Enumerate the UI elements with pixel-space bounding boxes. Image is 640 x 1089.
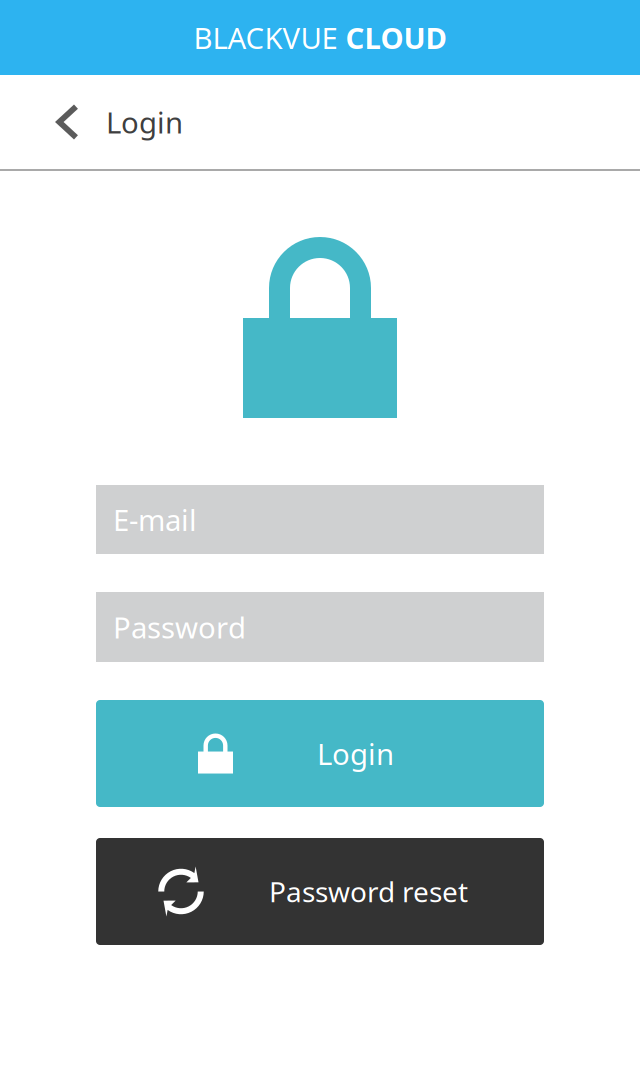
staticText: E-mail (113, 500, 197, 539)
staticText: Password reset (269, 873, 468, 910)
staticText: Password (113, 607, 246, 646)
button[interactable]: E-mail (96, 485, 544, 554)
staticText: CLOUD (345, 18, 446, 57)
staticText: BLACKVUE (193, 18, 345, 57)
staticText: Login (106, 102, 183, 141)
button[interactable]: Login (96, 700, 544, 807)
staticText: Login (317, 734, 394, 773)
button[interactable]: Password reset (96, 838, 544, 945)
button[interactable]: Password (96, 592, 544, 662)
button[interactable]: Back (0, 75, 106, 169)
